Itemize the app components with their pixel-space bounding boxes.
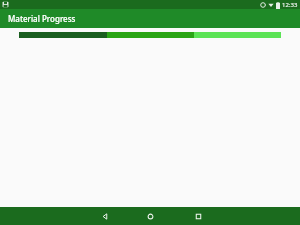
button[interactable]: Home <box>141 207 159 225</box>
button[interactable]: Back <box>96 207 114 225</box>
staticText: 12:33 <box>282 1 298 9</box>
button[interactable]: Recent apps <box>189 207 207 225</box>
staticText: Material Progress <box>8 13 76 24</box>
